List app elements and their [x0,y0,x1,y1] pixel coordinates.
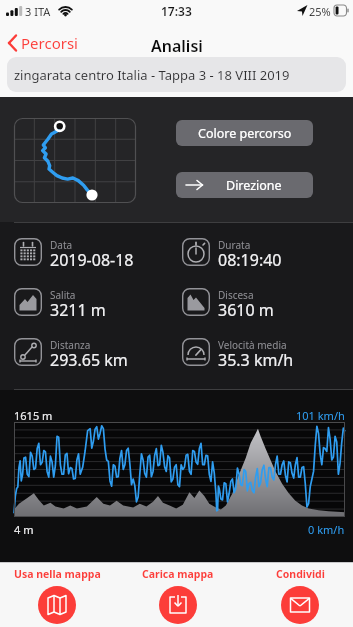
button[interactable]: Usa nella mappa [2,567,112,605]
button[interactable]: Carica mappa [123,567,233,605]
staticText: 4 m [14,522,34,537]
staticText: Salita [50,288,76,302]
staticText: Distanza [50,338,91,352]
staticText: zingarata centro Italia - Tappa 3 - 18 V… [14,66,290,84]
staticText: Usa nella mappa [14,567,101,581]
staticText: Durata [218,238,251,252]
staticText: Data [50,238,73,252]
button[interactable]: Condividi [245,567,353,605]
staticText: 0 km/h [308,522,345,537]
staticText: Analisi [151,35,203,57]
button[interactable]: Colore percorso [176,120,313,146]
staticText: Discesa [218,288,254,302]
staticText: Condividi [276,567,325,581]
staticText: 3610 m [218,299,274,321]
staticText: 08:19:40 [218,249,282,271]
staticText: 17:33 [161,3,192,19]
button[interactable]: Direzione [176,172,313,198]
staticText: Percorsi [21,33,78,53]
staticText: Direzione [226,177,282,194]
staticText: 25% [309,4,331,19]
staticText: 3211 m [50,299,106,321]
staticText: Velocità media [218,338,287,352]
staticText: 3 ITA [25,4,51,19]
staticText: Colore percorso [198,125,292,142]
staticText: 2019-08-18 [50,249,134,271]
staticText: 101 km/h [296,408,345,423]
button[interactable]: Percorsi [7,33,78,53]
staticText: 1615 m [14,408,53,423]
staticText: 35.3 km/h [218,349,294,371]
staticText: 293.65 km [50,349,128,371]
staticText: Carica mappa [142,567,214,581]
button[interactable]: zingarata centro Italia - Tappa 3 - 18 V… [7,57,346,92]
